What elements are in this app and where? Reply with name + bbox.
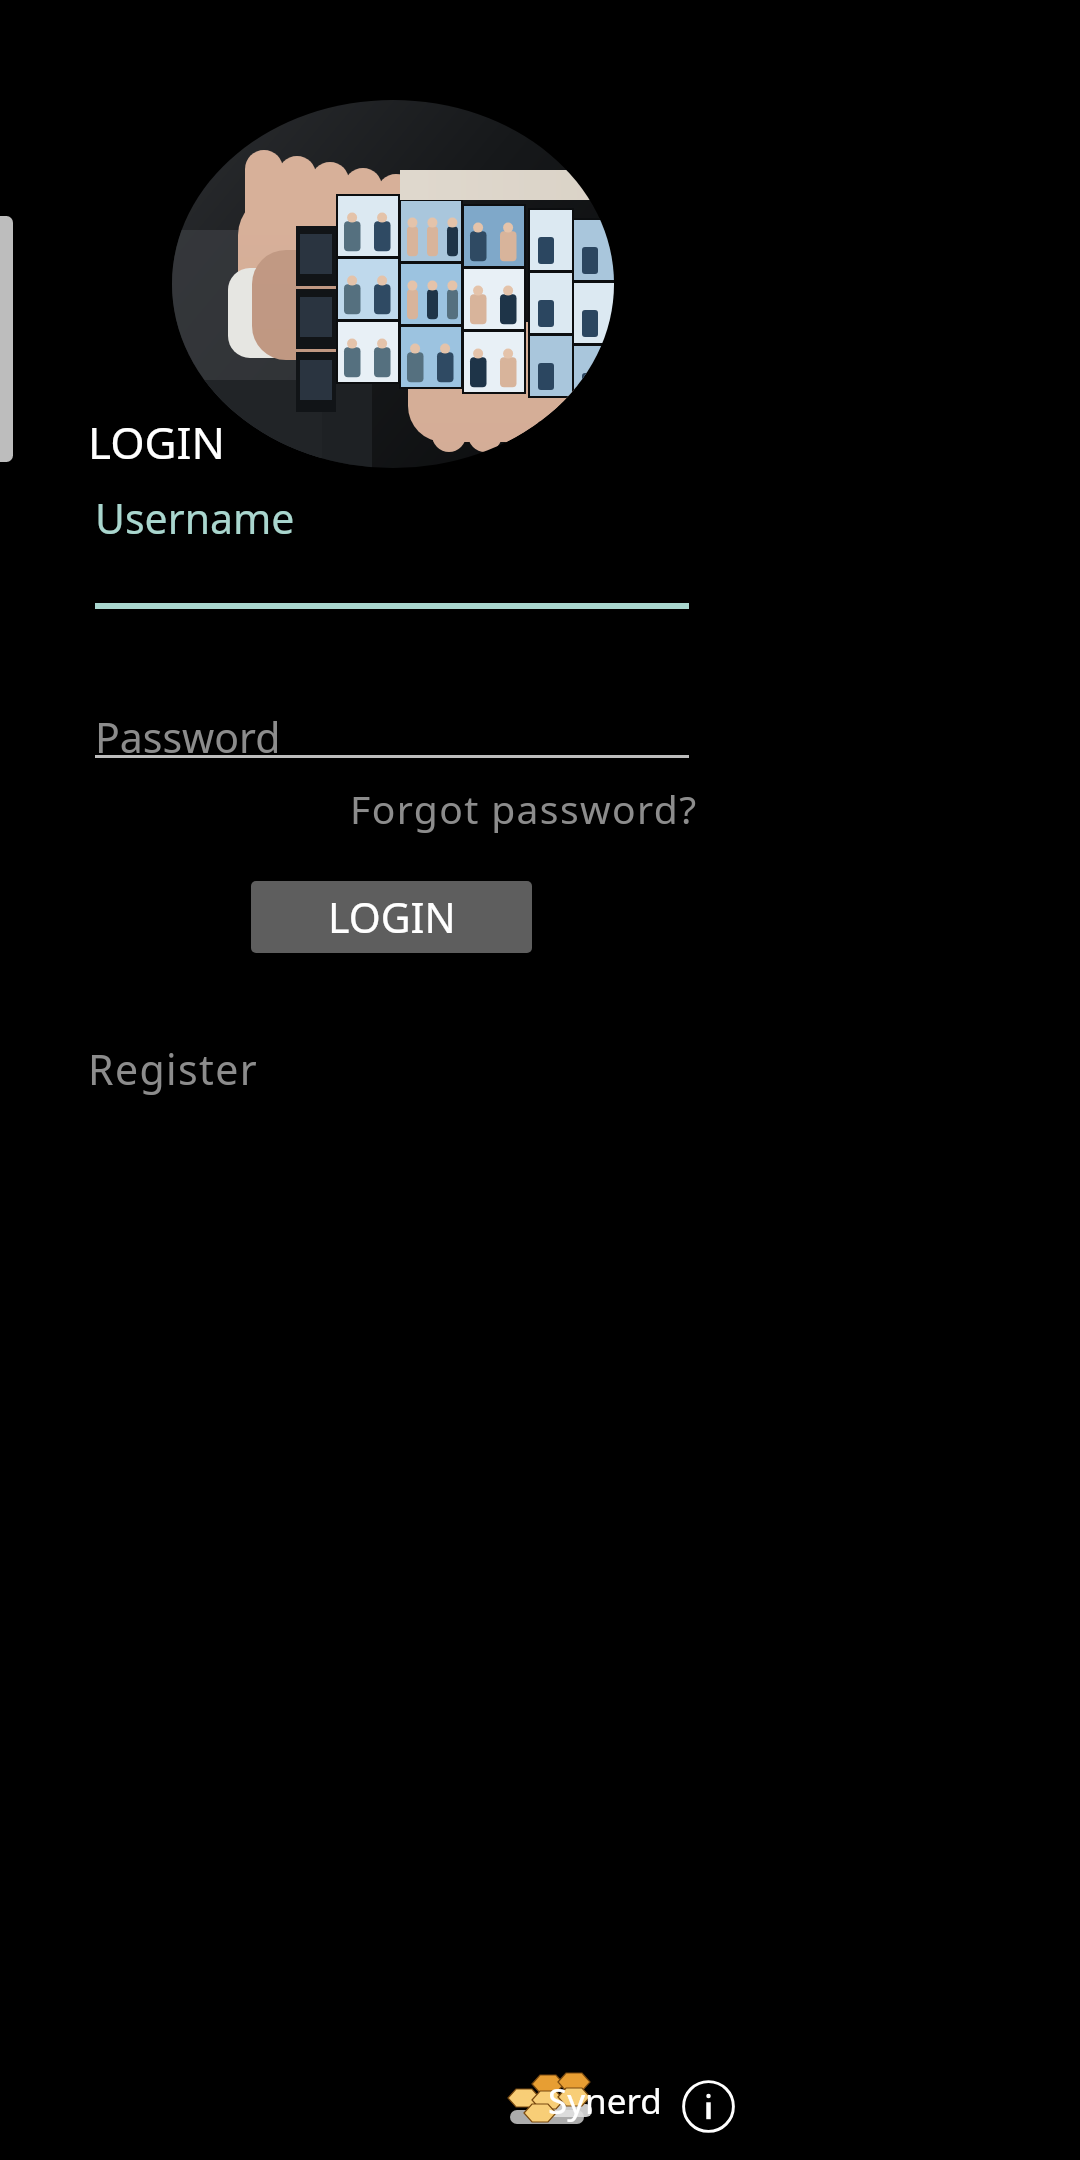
staticText: LOGIN bbox=[328, 889, 456, 945]
staticText: Register bbox=[88, 1041, 259, 1097]
staticText: Password bbox=[95, 709, 281, 765]
button[interactable]: LOGIN bbox=[251, 881, 532, 953]
button[interactable]: Synerdev bbox=[548, 2077, 670, 2127]
button[interactable]: Info bbox=[682, 2080, 735, 2133]
button[interactable]: Register bbox=[88, 1041, 259, 1097]
staticText: Synerdev bbox=[548, 2077, 670, 2127]
staticText: Forgot password? bbox=[350, 782, 698, 835]
staticText: LOGIN bbox=[88, 412, 225, 472]
staticText: Username bbox=[95, 490, 295, 546]
button[interactable]: Forgot password? bbox=[350, 782, 698, 835]
